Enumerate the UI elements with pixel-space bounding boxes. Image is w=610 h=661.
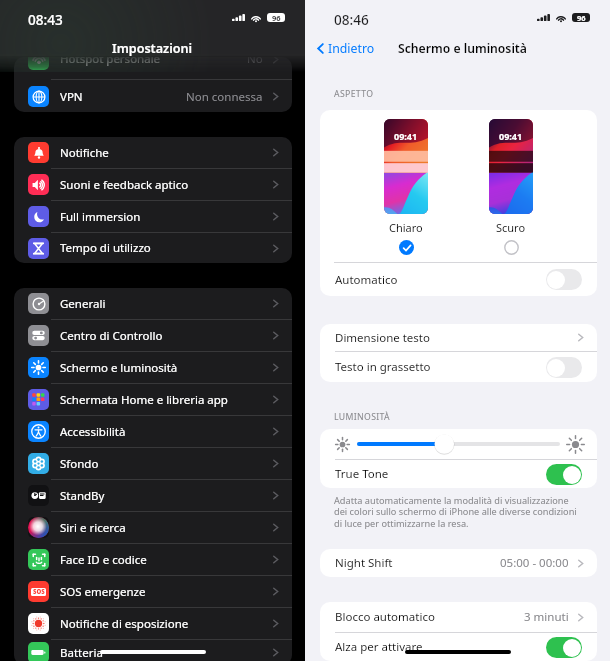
staticText: Testo in grassetto	[335, 359, 431, 375]
staticText: True Tone	[335, 466, 389, 482]
button[interactable]: Hotspot personale	[14, 57, 292, 79]
staticText: 96	[272, 13, 281, 22]
button[interactable]: Disattivo	[546, 269, 582, 290]
staticText: Accessibilità	[60, 424, 126, 440]
staticText: LUMINOSITÀ	[334, 411, 391, 423]
staticText: VPN	[60, 89, 83, 105]
button[interactable]: 09:41	[489, 119, 533, 214]
staticText: Notifiche	[60, 145, 109, 161]
button[interactable]: Dimensione testo	[320, 324, 597, 351]
button[interactable]: Attivo	[546, 637, 582, 658]
button[interactable]: Suoni e feedback aptico	[14, 169, 292, 200]
staticText: Generali	[60, 296, 106, 312]
button[interactable]: Scuro	[504, 240, 519, 255]
staticText: Impostazioni	[112, 40, 193, 57]
button[interactable]: Face ID e codice	[14, 544, 292, 575]
staticText: 08:43	[28, 10, 63, 29]
button[interactable]: Night Shift	[320, 549, 597, 577]
staticText: Centro di Controllo	[60, 328, 163, 344]
button[interactable]: Disattivo	[546, 357, 582, 378]
button[interactable]: Siri e ricerca	[14, 512, 292, 543]
button[interactable]: Notifiche di esposizione	[14, 608, 292, 639]
staticText: 09:41	[499, 130, 523, 142]
staticText: StandBy	[60, 488, 105, 504]
button[interactable]: Sfondo	[14, 448, 292, 479]
button[interactable]: VPN	[14, 80, 292, 112]
staticText: 09:41	[394, 130, 418, 142]
staticText: Batteria	[60, 645, 103, 661]
other: Indietro	[314, 42, 327, 55]
staticText: ASPETTO	[334, 88, 374, 100]
staticText: Schermata Home e libreria app	[60, 392, 228, 408]
button[interactable]: Notifiche	[14, 137, 292, 168]
button[interactable]: Full immersion	[14, 201, 292, 232]
staticText: 96	[577, 13, 586, 22]
button[interactable]: SOS	[14, 576, 292, 607]
button[interactable]: Alza per attivare	[320, 633, 597, 661]
staticText: Notifiche di esposizione	[60, 616, 189, 632]
button[interactable]: Batteria	[14, 640, 292, 661]
staticText: Siri e ricerca	[60, 520, 126, 536]
button[interactable]: Schermo e luminosità	[14, 352, 292, 383]
button[interactable]: Accessibilità	[14, 416, 292, 447]
staticText: 96	[272, 13, 281, 22]
button[interactable]: Tempo di utilizzo	[14, 233, 292, 263]
button[interactable]: Centro di Controllo	[14, 320, 292, 351]
staticText: Hotspot personale	[60, 57, 161, 67]
staticText: Night Shift	[335, 555, 393, 571]
staticText: 08:46	[334, 10, 369, 29]
staticText: Non connessa	[186, 89, 263, 105]
button[interactable]: Schermata Home e libreria app	[14, 384, 292, 415]
button[interactable]: Chiaro selezionato	[399, 240, 414, 255]
staticText: Tempo di utilizzo	[60, 240, 151, 256]
staticText: Automatico	[335, 272, 398, 288]
button[interactable]: Indietro	[314, 38, 375, 58]
staticText: Face ID e codice	[60, 552, 147, 568]
staticText: Schermo e luminosità	[60, 360, 178, 376]
staticText: Adatta automaticamente la modalità di vi…	[334, 494, 577, 530]
staticText: 3 minuti	[524, 609, 569, 625]
staticText: Sfondo	[60, 456, 99, 472]
staticText: Indietro	[328, 40, 375, 57]
staticText: Blocco automatico	[335, 609, 435, 625]
button[interactable]: Automatico	[320, 263, 597, 296]
staticText: SOS	[33, 588, 45, 596]
button[interactable]: Testo in grassetto	[320, 352, 597, 382]
button[interactable]: Generali	[14, 288, 292, 319]
staticText: No	[247, 57, 263, 67]
button[interactable]: True Tone	[320, 460, 597, 488]
staticText: 08:43	[28, 10, 63, 29]
staticText: Scuro	[496, 220, 526, 235]
button[interactable]: Attivo	[546, 464, 582, 485]
staticText: SOS emergenze	[60, 584, 146, 600]
staticText: Schermo e luminosità	[398, 40, 527, 57]
staticText: 05:00 - 00:00	[500, 555, 569, 571]
button[interactable]: 09:41	[384, 119, 428, 214]
staticText: Alza per attivare	[335, 639, 423, 655]
staticText: Full immersion	[60, 209, 141, 225]
button[interactable]: StandBy	[14, 480, 292, 511]
staticText: Chiaro	[389, 220, 423, 235]
staticText: Suoni e feedback aptico	[60, 177, 189, 193]
button[interactable]: Blocco automatico	[320, 602, 597, 632]
staticText: Dimensione testo	[335, 330, 430, 346]
